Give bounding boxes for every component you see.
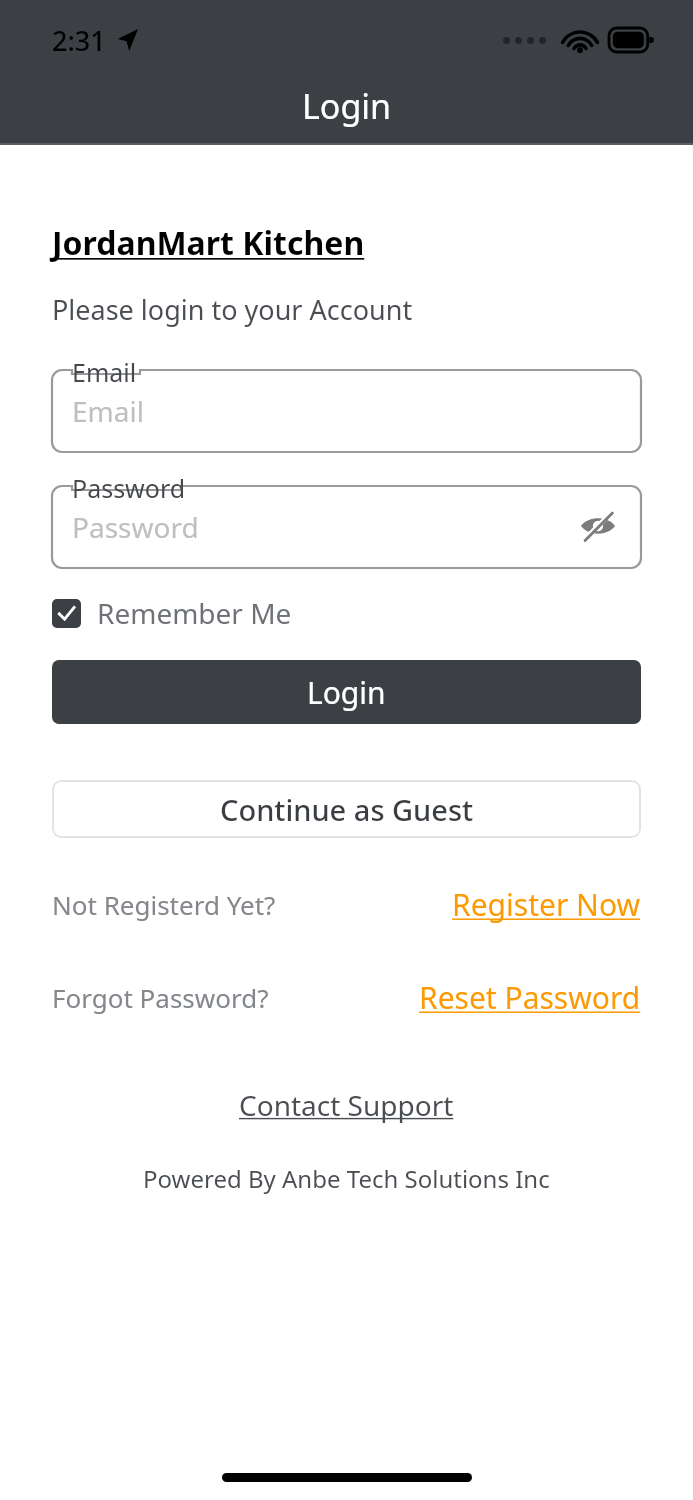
staticText: Login (302, 83, 392, 129)
staticText: Powered By Anbe Tech Solutions Inc (143, 1162, 550, 1195)
staticText: 2:31 (52, 22, 106, 59)
button[interactable]: Email (52, 358, 641, 452)
staticText: Not Registerd Yet? (52, 887, 276, 922)
staticText: Login (307, 672, 386, 713)
staticText: Email (72, 392, 144, 430)
button[interactable]: Register Now (452, 884, 641, 925)
button[interactable]: Login (52, 660, 641, 724)
button[interactable]: Remember Me (52, 594, 292, 632)
button[interactable]: Reset Password (419, 977, 641, 1018)
button[interactable]: Show password (575, 503, 621, 549)
button[interactable]: Contact Support (239, 1086, 454, 1124)
button[interactable]: Password (52, 474, 641, 568)
staticText: Please login to your Account (52, 291, 413, 328)
staticText: Password (72, 471, 186, 505)
button[interactable]: JordanMart Kitchen (52, 221, 365, 265)
staticText: Continue as Guest (220, 790, 474, 829)
button[interactable]: Continue as Guest (52, 780, 641, 838)
staticText: Email (72, 355, 137, 389)
staticText: Remember Me (97, 594, 292, 632)
staticText: Password (72, 508, 199, 546)
staticText: Forgot Password? (52, 980, 269, 1015)
